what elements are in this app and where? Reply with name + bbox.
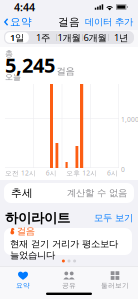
staticText: 요약: [16, 282, 30, 290]
staticText: 1일: [10, 31, 24, 44]
staticText: 오늘: [5, 72, 21, 82]
staticText: 걸음: [56, 65, 74, 77]
button[interactable]: 요약: [0, 13, 32, 30]
button[interactable]: 모두 보기: [94, 212, 133, 224]
staticText: 6시: [107, 169, 118, 177]
staticText: 오전 12시: [5, 169, 36, 177]
staticText: 하이라이트: [5, 210, 70, 226]
staticText: 1주: [36, 31, 50, 44]
button[interactable]: 1개월: [56, 31, 82, 44]
button[interactable]: 요약: [0, 266, 46, 290]
staticText: 오후 12시: [66, 169, 97, 177]
staticText: 데이터 추가: [85, 16, 133, 28]
staticText: 1년: [114, 31, 128, 44]
staticText: 걸음: [58, 15, 80, 28]
staticText: 걸음: [17, 225, 35, 237]
button[interactable]: 걸음: [0, 228, 138, 255]
staticText: 추세: [11, 186, 33, 199]
staticText: 현재 걷기 거리가 평소보다 늘었습니다: [10, 238, 118, 261]
staticText: 공유: [62, 282, 76, 290]
staticText: 0: [121, 165, 125, 174]
button[interactable]: 6개월: [82, 31, 108, 44]
button[interactable]: 1주: [30, 31, 56, 44]
staticText: 6개월: [83, 31, 106, 44]
staticText: 1,000: [121, 115, 138, 124]
staticText: 1개월: [57, 31, 80, 44]
staticText: 4:44: [14, 0, 35, 14]
button[interactable]: 1일: [4, 31, 30, 44]
button[interactable]: 1년: [108, 31, 134, 44]
staticText: 모두 보기: [94, 212, 133, 224]
button[interactable]: 둘러보기: [92, 266, 138, 290]
staticText: 5,245: [5, 52, 55, 78]
button[interactable]: 공유: [46, 266, 92, 290]
staticText: 계산할 수 없음: [67, 187, 127, 199]
button[interactable]: 추세: [0, 183, 138, 203]
staticText: 요약: [10, 15, 32, 28]
staticText: 총: [5, 49, 13, 58]
staticText: 둘러보기: [101, 282, 129, 290]
button[interactable]: 데이터 추가: [85, 14, 138, 30]
staticText: 6시: [46, 169, 57, 177]
